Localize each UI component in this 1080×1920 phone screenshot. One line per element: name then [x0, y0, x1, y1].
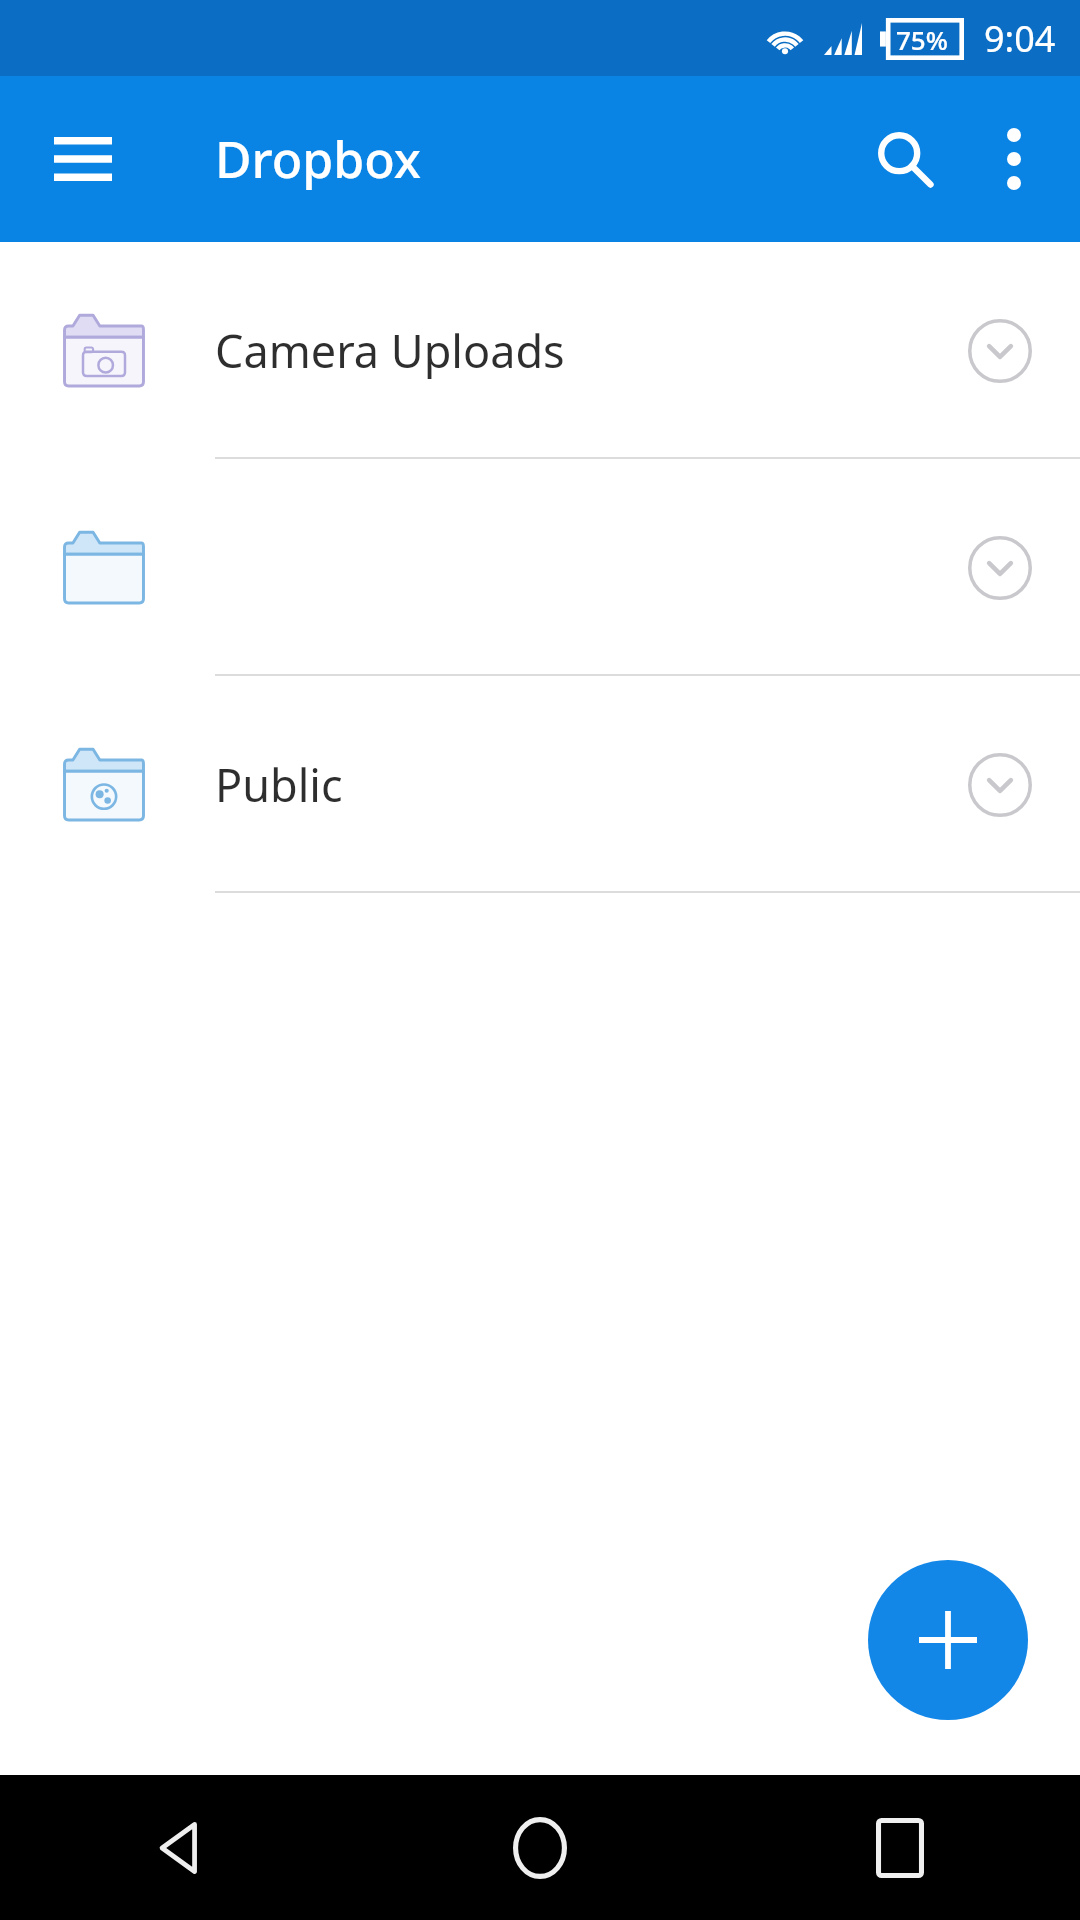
button[interactable]: Expand folder [0, 459, 1080, 676]
staticText: Camera Uploads [215, 320, 565, 381]
button[interactable]: Back [0, 1775, 360, 1920]
button[interactable]: Open navigation drawer [24, 100, 142, 218]
button[interactable]: More options [964, 109, 1064, 209]
staticText: Public [215, 754, 343, 815]
button[interactable]: Recent apps [720, 1775, 1080, 1920]
button[interactable]: Public [0, 676, 1080, 893]
button[interactable]: Add [868, 1560, 1028, 1720]
staticText: Dropbox [215, 125, 421, 193]
button[interactable]: Expand Public [940, 725, 1060, 845]
button[interactable]: Expand folder [940, 508, 1060, 628]
staticText: 75% [896, 22, 948, 57]
button[interactable]: Expand Camera Uploads [940, 291, 1060, 411]
button[interactable]: Camera Uploads [0, 242, 1080, 459]
button[interactable]: Search [846, 100, 964, 218]
button[interactable]: Home [360, 1775, 720, 1920]
staticText: 9:04 [984, 14, 1056, 63]
